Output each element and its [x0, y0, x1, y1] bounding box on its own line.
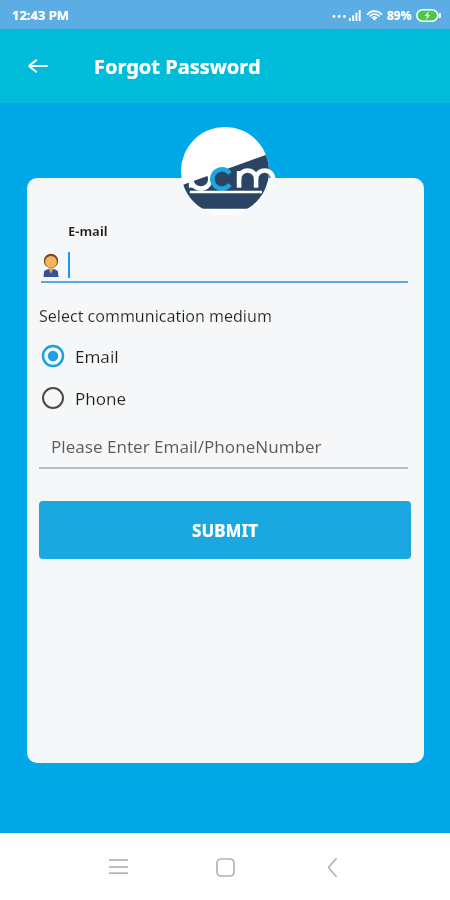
- staticText: Select communication medium: [39, 305, 272, 327]
- button[interactable]: Email: [41, 341, 408, 371]
- staticText: 89%: [387, 7, 412, 23]
- staticText: SUBMIT: [192, 519, 258, 542]
- button[interactable]: SUBMIT: [39, 501, 411, 559]
- staticText: Phone: [75, 387, 127, 410]
- staticText: Email: [75, 345, 119, 368]
- button[interactable]: Back: [310, 845, 354, 889]
- button[interactable]: Please Enter Email/PhoneNumber: [39, 435, 408, 469]
- button[interactable]: Phone: [41, 383, 408, 413]
- button[interactable]: Back: [16, 44, 60, 88]
- staticText: 12:43 PM: [12, 6, 70, 24]
- button[interactable]: Recent apps: [96, 845, 140, 889]
- button[interactable]: Home: [203, 845, 247, 889]
- staticText: Please Enter Email/PhoneNumber: [51, 435, 322, 458]
- staticText: E-mail: [68, 222, 108, 240]
- staticText: Forgot Password: [94, 53, 261, 80]
